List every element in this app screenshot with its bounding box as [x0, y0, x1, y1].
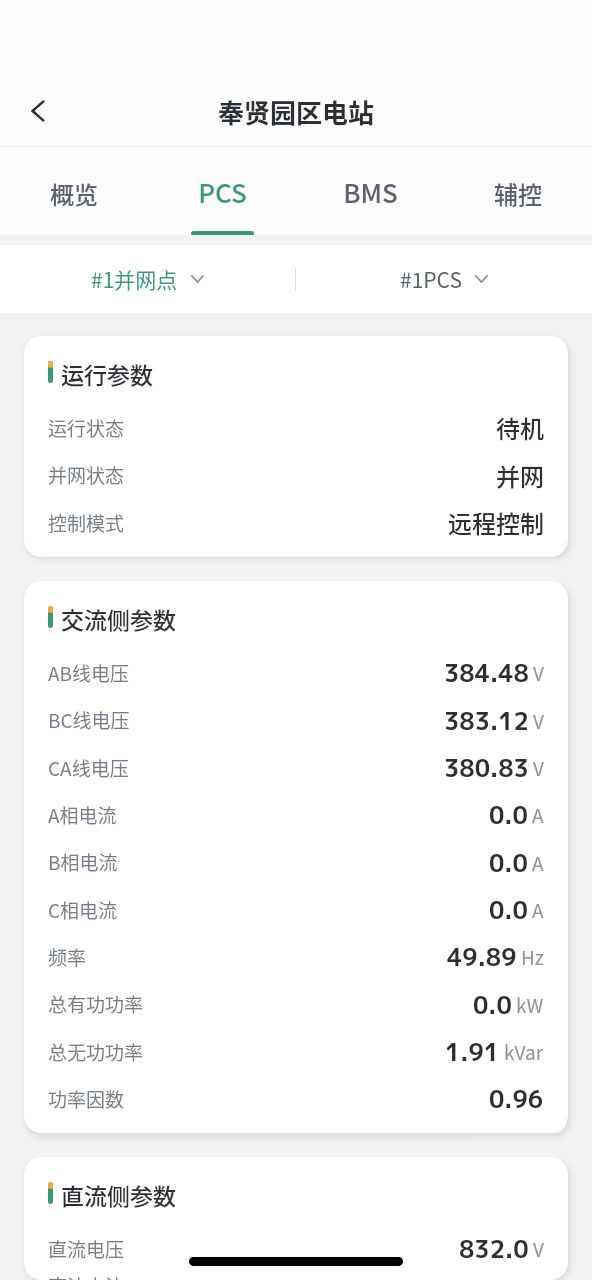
staticText: V: [533, 659, 544, 687]
staticText: 待机: [496, 410, 544, 445]
staticText: 奉贤园区电站: [218, 93, 375, 131]
button[interactable]: #1并网点: [0, 245, 295, 313]
button[interactable]: 直流电流: [48, 1272, 544, 1280]
button[interactable]: Back: [14, 87, 62, 135]
staticText: 交流侧参数: [61, 602, 176, 632]
staticText: 并网: [496, 458, 544, 493]
staticText: B相电流: [48, 848, 118, 876]
button[interactable]: 频率: [48, 933, 544, 980]
staticText: A: [532, 801, 544, 829]
button[interactable]: 辅控: [444, 147, 592, 235]
button[interactable]: 控制模式: [48, 499, 544, 546]
button[interactable]: 功率因数: [48, 1075, 544, 1122]
staticText: #1并网点: [91, 264, 178, 294]
staticText: 384.48: [444, 656, 529, 689]
staticText: 功率因数: [48, 1085, 125, 1113]
staticText: 运行参数: [61, 357, 153, 387]
staticText: 概览: [50, 176, 98, 211]
staticText: 控制模式: [48, 509, 125, 537]
button[interactable]: 直流电压: [48, 1225, 544, 1272]
button[interactable]: B相电流: [48, 838, 544, 886]
button[interactable]: PCS: [148, 147, 296, 235]
staticText: 380.83: [444, 751, 529, 784]
button[interactable]: 概览: [0, 147, 148, 235]
staticText: V: [533, 1235, 544, 1263]
staticText: 0.0: [473, 988, 512, 1021]
button[interactable]: BMS: [296, 147, 444, 235]
button[interactable]: 总有功功率: [48, 980, 544, 1028]
staticText: 辅控: [494, 176, 542, 211]
staticText: 832.0: [459, 1232, 529, 1265]
staticText: 远程控制: [448, 505, 544, 540]
staticText: 运行状态: [48, 414, 125, 442]
staticText: 0.0: [489, 893, 528, 926]
staticText: V: [533, 754, 544, 782]
staticText: A: [532, 896, 544, 924]
button[interactable]: 总无功功率: [48, 1028, 544, 1075]
staticText: A相电流: [48, 801, 117, 829]
staticText: kW: [516, 991, 544, 1019]
staticText: C相电流: [48, 896, 118, 924]
staticText: 1.91: [445, 1035, 500, 1068]
staticText: 直流侧参数: [61, 1178, 176, 1208]
staticText: 0.0: [489, 846, 528, 879]
staticText: BMS: [343, 173, 398, 211]
staticText: CA线电压: [48, 754, 129, 782]
staticText: 总有功功率: [48, 990, 144, 1018]
staticText: 0.0: [489, 798, 528, 831]
button[interactable]: C相电流: [48, 886, 544, 933]
staticText: BC线电压: [48, 706, 130, 734]
staticText: #1PCS: [400, 264, 462, 294]
button[interactable]: AB线电压: [48, 649, 544, 696]
staticText: 383.12: [444, 704, 529, 737]
button[interactable]: #1PCS: [296, 245, 592, 313]
staticText: 直流电压: [48, 1235, 125, 1263]
staticText: A: [532, 849, 544, 877]
button[interactable]: A相电流: [48, 791, 544, 838]
staticText: AB线电压: [48, 659, 130, 687]
staticText: V: [533, 707, 544, 735]
staticText: 0.96: [489, 1082, 544, 1115]
staticText: 直流电流: [48, 1272, 125, 1280]
staticText: 频率: [48, 943, 87, 971]
staticText: kVar: [504, 1038, 544, 1066]
button[interactable]: 运行状态: [48, 404, 544, 451]
staticText: PCS: [198, 173, 247, 211]
staticText: Hz: [521, 943, 544, 971]
staticText: 总无功功率: [48, 1038, 144, 1066]
staticText: 并网状态: [48, 461, 125, 489]
button[interactable]: 并网状态: [48, 451, 544, 499]
staticText: 49.89: [447, 940, 517, 973]
button[interactable]: BC线电压: [48, 696, 544, 744]
button[interactable]: CA线电压: [48, 744, 544, 791]
